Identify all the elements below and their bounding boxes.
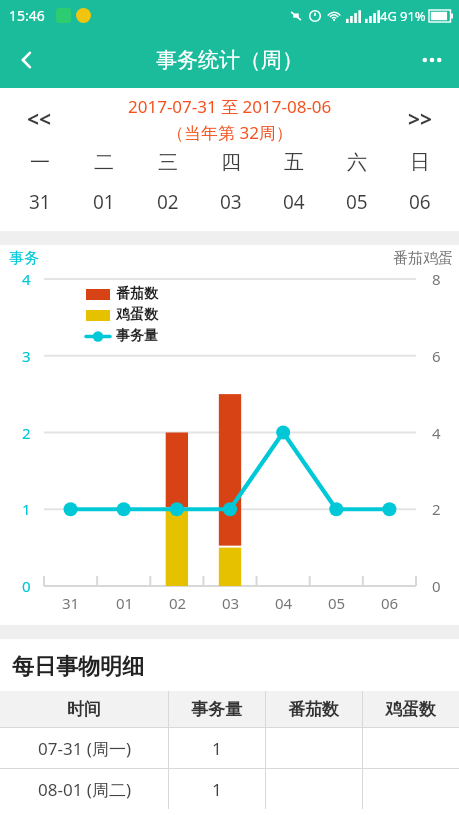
staticText: 事务统计（周） [156, 47, 303, 73]
staticText: 1 [22, 499, 31, 519]
staticText: 8 [432, 269, 441, 289]
staticText: 番茄数 [116, 285, 158, 303]
staticText: 02 [157, 189, 179, 215]
staticText: 04 [283, 189, 305, 215]
staticText: 三 [158, 150, 178, 175]
staticText: 05 [328, 593, 346, 613]
button[interactable]: 05 [325, 189, 388, 215]
button[interactable]: Back [0, 31, 54, 88]
staticText: 0 [22, 576, 31, 596]
staticText: 05 [346, 189, 368, 215]
staticText: 03 [222, 593, 240, 613]
staticText: 31 [62, 593, 80, 613]
staticText: 二 [94, 150, 114, 175]
staticText: 06 [381, 593, 399, 613]
staticText: 番茄鸡蛋 [393, 249, 453, 268]
staticText: 1 [212, 778, 222, 801]
button[interactable]: 07-31 (周一) [0, 728, 459, 768]
button[interactable]: 08-01 (周二) [0, 769, 459, 809]
staticText: 02 [169, 593, 187, 613]
staticText: 01 [116, 593, 134, 613]
button[interactable]: 03 [199, 189, 262, 215]
staticText: 04 [275, 593, 293, 613]
staticText: 4 [432, 423, 441, 443]
button[interactable]: << [0, 88, 78, 150]
button[interactable]: More options [405, 31, 459, 88]
staticText: 0 [432, 576, 441, 596]
staticText: 2 [432, 499, 441, 519]
staticText: >> [408, 105, 433, 134]
button[interactable]: 06 [388, 189, 451, 215]
staticText: 4 [22, 269, 31, 289]
staticText: 06 [409, 189, 431, 215]
staticText: 91% [400, 7, 426, 25]
button[interactable]: 04 [262, 189, 325, 215]
staticText: 07-31 (周一) [38, 737, 131, 760]
staticText: 鸡蛋数 [385, 699, 436, 720]
staticText: （当年第 32周） [167, 121, 293, 144]
staticText: 31 [29, 189, 51, 215]
staticText: 6 [432, 346, 441, 366]
button[interactable]: 02 [136, 189, 199, 215]
staticText: 03 [220, 189, 242, 215]
staticText: 番茄数 [288, 699, 339, 720]
button[interactable]: >> [381, 88, 459, 150]
staticText: 四 [221, 150, 241, 175]
staticText: 2 [22, 423, 31, 443]
staticText: 事务 [9, 249, 39, 268]
staticText: 08-01 (周二) [38, 778, 131, 801]
staticText: 3 [22, 346, 31, 366]
staticText: << [27, 105, 52, 134]
staticText: 4G [380, 7, 397, 25]
staticText: 事务量 [191, 699, 242, 720]
button[interactable]: 31 [8, 189, 72, 215]
staticText: 日 [410, 150, 430, 175]
staticText: 15:46 [9, 6, 45, 25]
staticText: 1 [212, 737, 222, 760]
staticText: 时间 [67, 699, 101, 720]
staticText: 一 [30, 150, 50, 175]
staticText: 2017-07-31 至 2017-08-06 [128, 95, 332, 118]
button[interactable]: 01 [72, 189, 136, 215]
staticText: 01 [93, 189, 115, 215]
staticText: 六 [347, 150, 367, 175]
staticText: 每日事物明细 [12, 653, 144, 681]
staticText: 事务量 [116, 327, 158, 345]
staticText: 五 [284, 150, 304, 175]
staticText: 鸡蛋数 [116, 306, 158, 324]
